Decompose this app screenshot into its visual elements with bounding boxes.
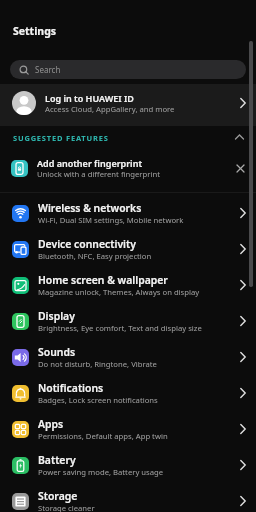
staticText: Notifications xyxy=(38,381,104,395)
button[interactable]: Storage xyxy=(0,483,256,512)
staticText: Apps xyxy=(38,417,64,431)
button[interactable]: Device connectivity xyxy=(0,231,256,267)
staticText: Home screen & wallpaper xyxy=(38,273,168,287)
button[interactable]: Add another fingerprint xyxy=(0,150,256,186)
staticText: Access Cloud, AppGallery, and more xyxy=(45,104,175,114)
staticText: Battery xyxy=(38,453,76,467)
staticText: Do not disturb, Ringtone, Vibrate xyxy=(38,359,157,369)
staticText: SUGGESTED FEATURES xyxy=(13,133,109,143)
button[interactable]: Sounds xyxy=(0,339,256,375)
staticText: Badges, Lock screen notifications xyxy=(38,395,158,405)
staticText: Brightness, Eye comfort, Text and displa… xyxy=(38,323,202,333)
staticText: Unlock with a different fingerprint xyxy=(37,169,160,179)
staticText: Wi-Fi, Dual SIM settings, Mobile network xyxy=(38,215,184,225)
staticText: Display xyxy=(38,309,75,323)
staticText: Power saving mode, Battery usage xyxy=(38,467,164,477)
button[interactable]: Battery xyxy=(0,447,256,483)
staticText: Sounds xyxy=(38,345,76,359)
button[interactable]: Search xyxy=(10,60,246,79)
staticText: Search xyxy=(35,64,61,75)
button[interactable] xyxy=(236,164,245,173)
staticText: Bluetooth, NFC, Easy projection xyxy=(38,251,152,261)
staticText: Permissions, Default apps, App twin xyxy=(38,431,168,441)
staticText: Storage cleaner xyxy=(38,503,95,512)
staticText: Storage xyxy=(38,489,78,503)
button[interactable]: Apps xyxy=(0,411,256,447)
staticText: Device connectivity xyxy=(38,237,136,251)
staticText: Wireless & networks xyxy=(38,201,142,215)
button[interactable]: Home screen & wallpaper xyxy=(0,267,256,303)
button[interactable]: Display xyxy=(0,303,256,339)
staticText: Log in to HUAWEI ID xyxy=(45,92,134,104)
button[interactable]: Notifications xyxy=(0,375,256,411)
staticText: Magazine unlock, Themes, Always on displ… xyxy=(38,287,200,297)
button[interactable]: Wireless & networks xyxy=(0,195,256,231)
staticText: Settings xyxy=(13,24,57,38)
staticText: Add another fingerprint xyxy=(37,157,143,169)
button[interactable]: Log in to HUAWEI ID xyxy=(0,84,256,126)
